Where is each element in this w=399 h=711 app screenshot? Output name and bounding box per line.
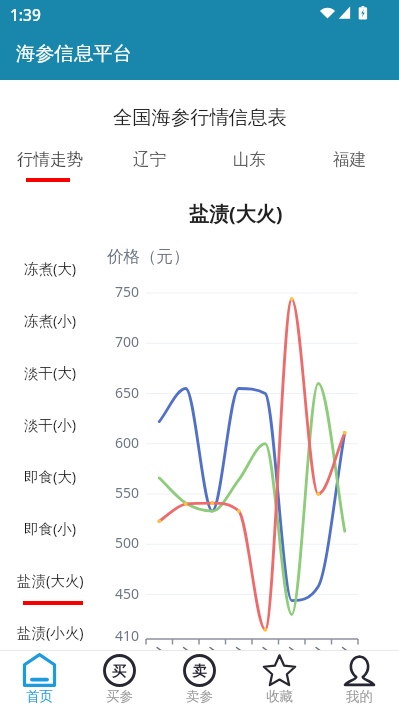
staticText: 行情走势 (17, 149, 83, 170)
staticText: 450 (115, 584, 140, 602)
staticText: 冻煮(小) (24, 310, 77, 330)
staticText: 价格（元） (107, 246, 190, 267)
button[interactable]: 冻煮(大) (0, 254, 100, 306)
button[interactable]: 卖参 (159, 651, 239, 711)
staticText: 盐渍(大火) (189, 200, 283, 227)
staticText: 冻煮(大) (24, 258, 77, 278)
button[interactable]: 山东 (199, 139, 299, 185)
staticText: 700 (115, 332, 140, 350)
button[interactable]: 盐渍(小火) (0, 618, 100, 670)
button[interactable]: 福建 (299, 139, 399, 185)
staticText: 410 (115, 626, 140, 644)
staticText: 550 (115, 483, 140, 501)
button[interactable]: 首页 (0, 651, 79, 711)
staticText: 1:39 (10, 4, 41, 25)
staticText: 买参 (106, 688, 133, 705)
button[interactable]: 冻煮(小) (0, 306, 100, 358)
staticText: 买 (112, 662, 127, 680)
staticText: 500 (115, 533, 140, 551)
staticText: 淡干(小) (24, 414, 77, 434)
staticText: 600 (115, 433, 140, 451)
staticText: 辽宁 (133, 149, 166, 170)
staticText: 海参信息平台 (16, 41, 132, 65)
button[interactable]: 即食(小) (0, 514, 100, 566)
button[interactable]: 淡干(大) (0, 358, 100, 410)
button[interactable]: 辽宁 (99, 139, 199, 185)
button[interactable]: 盐渍(大火) (0, 566, 100, 618)
staticText: 山东 (233, 149, 266, 170)
staticText: 我的 (346, 688, 373, 705)
staticText: 750 (115, 282, 140, 300)
button[interactable]: 收藏 (239, 651, 319, 711)
staticText: 卖 (192, 662, 207, 680)
button[interactable]: 买参 (79, 651, 159, 711)
staticText: 即食(大) (24, 466, 77, 486)
button[interactable]: 行情走势 (0, 139, 99, 185)
staticText: 收藏 (266, 688, 293, 705)
button[interactable]: 淡干(小) (0, 410, 100, 462)
staticText: 盐渍(大火) (17, 570, 84, 590)
staticText: 福建 (333, 149, 366, 170)
staticText: 盐渍(小火) (17, 622, 84, 642)
staticText: 首页 (26, 688, 53, 705)
staticText: 淡干(大) (24, 362, 77, 382)
staticText: 即食(小) (24, 518, 77, 538)
button[interactable]: 即食(大) (0, 462, 100, 514)
staticText: 全国海参行情信息表 (113, 105, 287, 129)
staticText: 650 (115, 383, 140, 401)
button[interactable]: 我的 (319, 651, 399, 711)
staticText: 卖参 (186, 688, 213, 705)
